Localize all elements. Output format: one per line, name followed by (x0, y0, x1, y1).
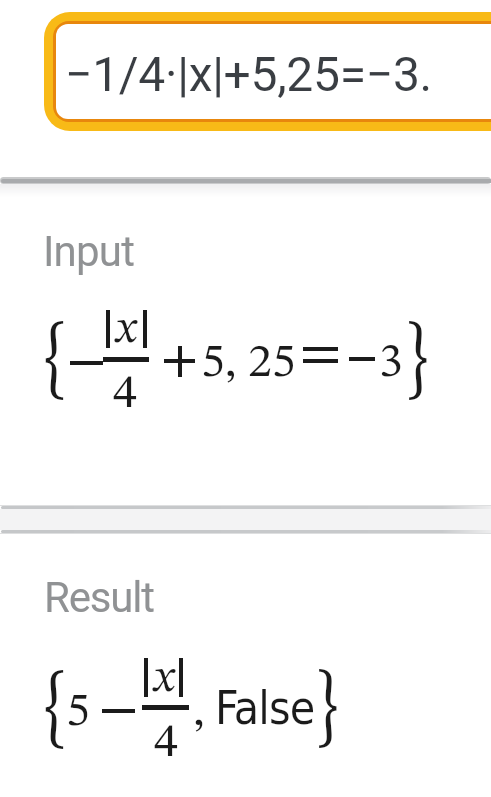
staticText: { (44, 668, 67, 752)
staticText: } (406, 319, 429, 403)
staticText: 4 (113, 370, 137, 418)
staticText: , (193, 688, 205, 736)
staticText: { (44, 319, 67, 403)
staticText: 25 (248, 339, 296, 387)
staticText: 5, (201, 339, 237, 387)
staticText: 5 (66, 688, 90, 736)
staticText: False (215, 681, 315, 735)
staticText: x (116, 308, 137, 353)
staticText: } (316, 667, 339, 751)
staticText: −1/4·|x|+5,25=−3. (65, 46, 432, 102)
staticText: Result (44, 573, 154, 622)
staticText: Input (43, 227, 135, 276)
staticText: 3 (379, 339, 403, 387)
staticText: 4 (154, 719, 178, 767)
staticText: x (154, 657, 175, 702)
